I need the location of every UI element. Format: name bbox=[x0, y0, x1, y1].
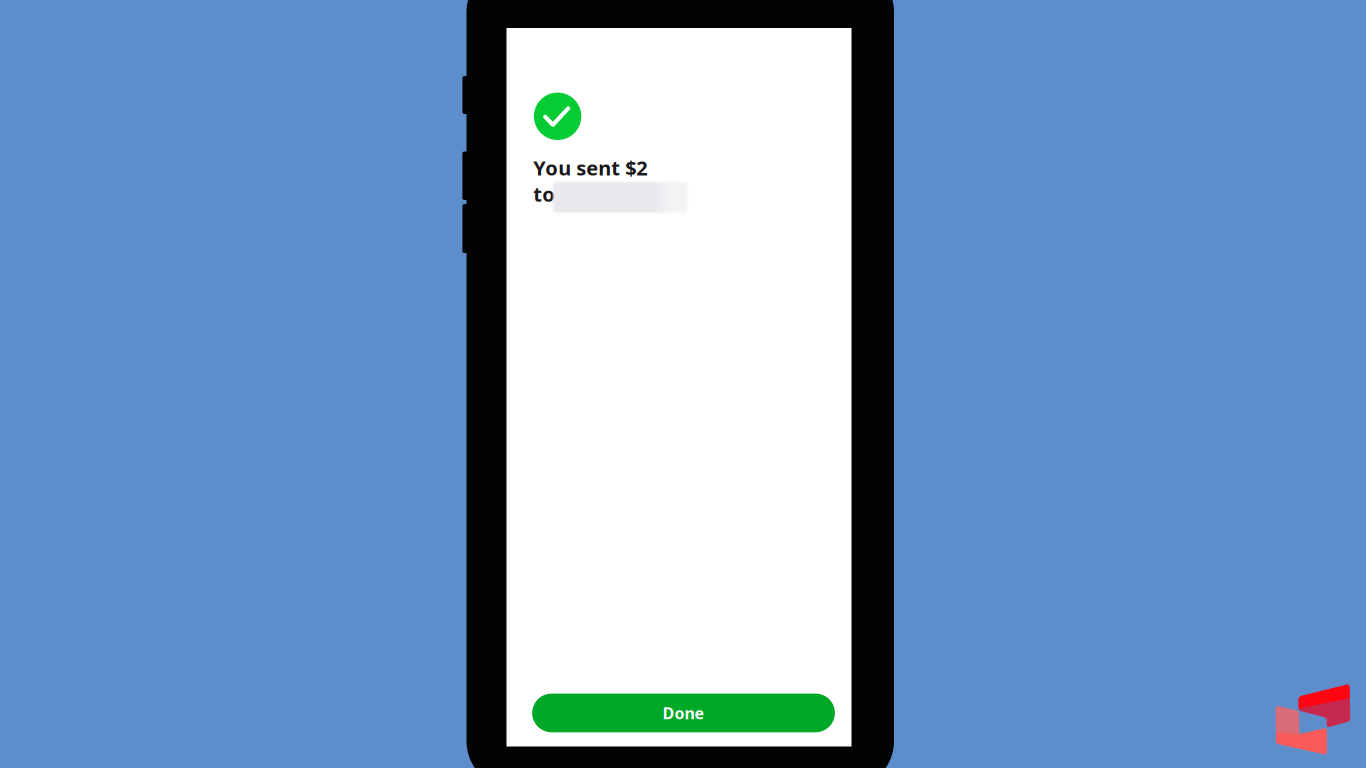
staticText: You sent $2 bbox=[533, 154, 647, 181]
staticText: Done bbox=[663, 702, 705, 723]
button[interactable]: Done bbox=[532, 694, 835, 732]
staticText: to bbox=[533, 181, 555, 207]
